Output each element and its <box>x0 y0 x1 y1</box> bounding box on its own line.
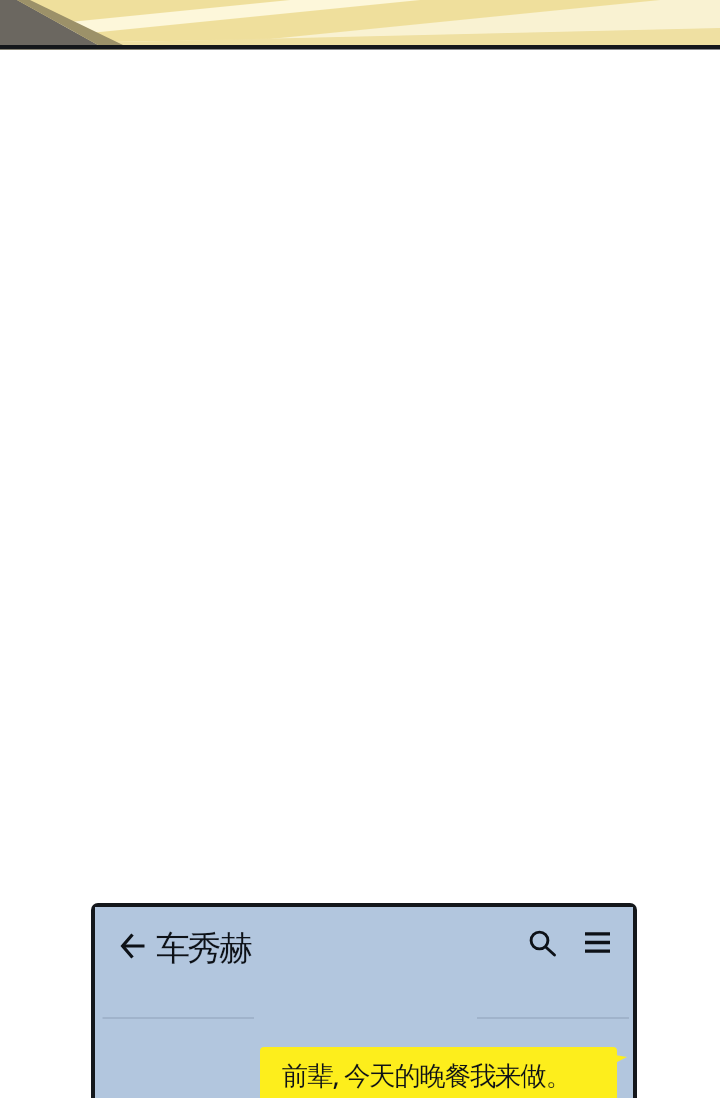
staticText: 车秀赫 <box>156 927 251 970</box>
button[interactable]: 前辈, 今天的晚餐我来做。 <box>260 1047 617 1098</box>
button[interactable]: 车秀赫 <box>119 927 251 970</box>
button[interactable]: Menu <box>576 921 618 963</box>
button[interactable]: Search <box>522 922 564 964</box>
staticText: 前辈, 今天的晚餐我来做。 <box>282 1057 571 1093</box>
